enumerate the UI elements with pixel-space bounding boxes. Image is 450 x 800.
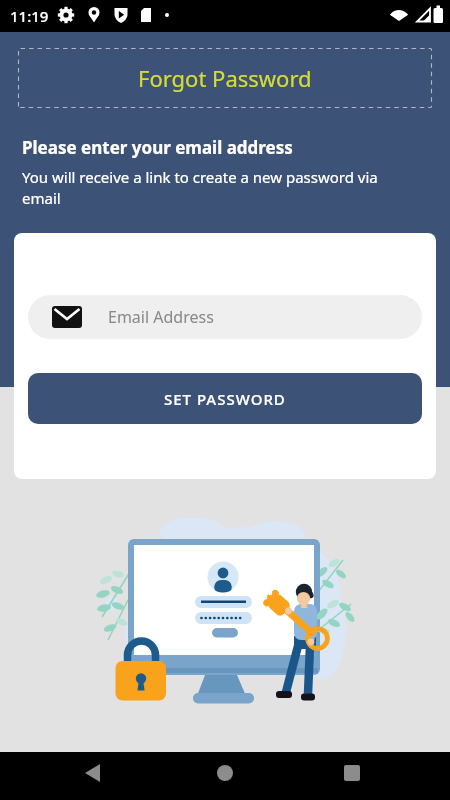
button[interactable] xyxy=(77,752,125,800)
button[interactable] xyxy=(201,752,249,800)
button[interactable]: SET PASSWORD xyxy=(28,373,422,424)
staticText: SET PASSWORD xyxy=(164,389,286,409)
staticText: Forgot Password xyxy=(138,63,312,93)
button[interactable]: Email Address xyxy=(28,295,422,339)
staticText: You will receive a link to create a new … xyxy=(22,167,378,209)
staticText: 11:19 xyxy=(10,6,49,26)
staticText: Email Address xyxy=(108,306,214,328)
button[interactable] xyxy=(326,752,374,800)
staticText: Please enter your email address xyxy=(22,136,293,159)
